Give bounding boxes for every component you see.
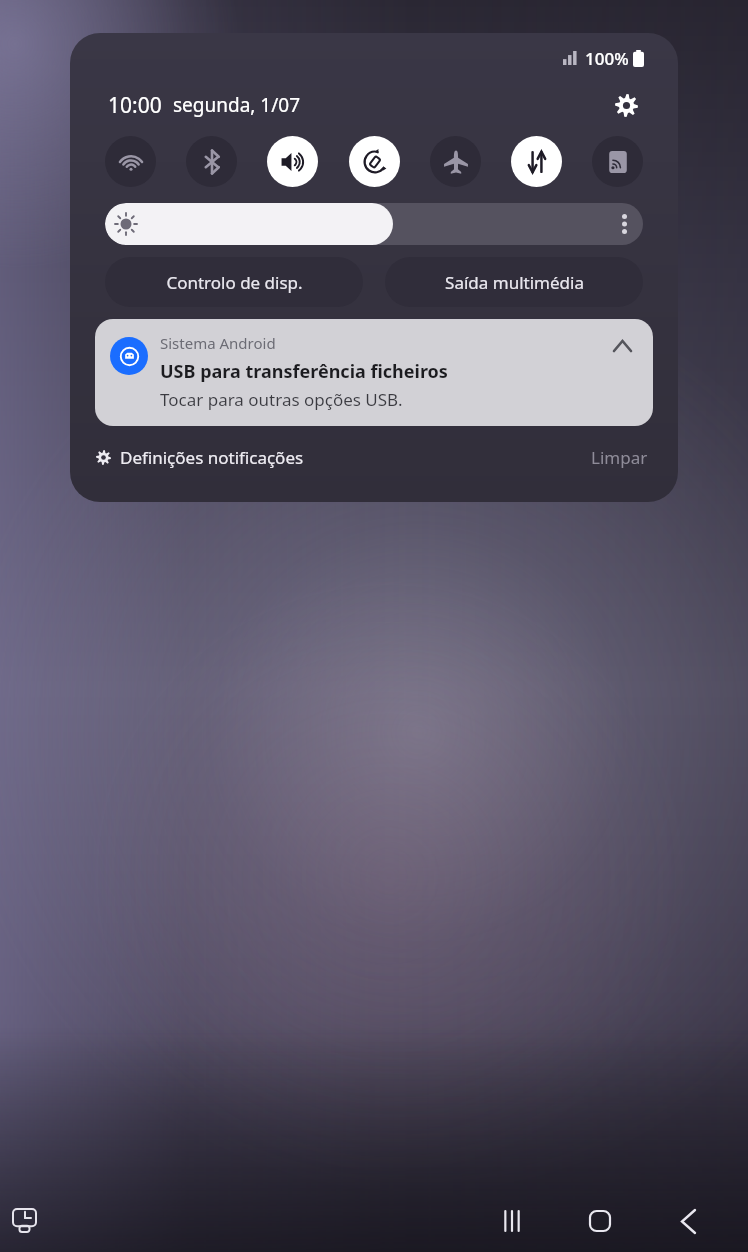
- button[interactable]: Wi-Fi: [105, 136, 156, 187]
- button[interactable]: Voltar: [666, 1199, 710, 1243]
- staticText: Controlo de disp.: [166, 271, 303, 294]
- button[interactable]: Reduzir: [605, 329, 639, 363]
- staticText: Tocar para outras opções USB.: [160, 388, 403, 411]
- button[interactable]: Sistema Android: [95, 319, 653, 426]
- button[interactable]: Início: [578, 1199, 622, 1243]
- staticText: segunda, 1/07: [173, 92, 301, 118]
- button[interactable]: Controlo de disp.: [105, 257, 363, 307]
- staticText: USB para transferência ficheiros: [160, 359, 448, 384]
- button[interactable]: Definições: [606, 85, 646, 125]
- button[interactable]: Ocultar teclado: [4, 1201, 44, 1241]
- button[interactable]: Limpar: [591, 446, 648, 469]
- staticText: 10:00: [108, 91, 162, 120]
- button[interactable]: Rotação automática: [349, 136, 400, 187]
- button[interactable]: Definições notificações: [96, 446, 304, 469]
- button[interactable]: Brilho: [105, 203, 643, 245]
- staticText: Limpar: [591, 446, 648, 469]
- button[interactable]: Recentes: [490, 1199, 534, 1243]
- button[interactable]: Saída multimédia: [385, 257, 643, 307]
- button[interactable]: Bluetooth: [186, 136, 237, 187]
- staticText: Definições notificações: [120, 446, 304, 469]
- staticText: Saída multimédia: [445, 271, 584, 294]
- staticText: Sistema Android: [160, 333, 276, 353]
- button[interactable]: Smart View: [592, 136, 643, 187]
- button[interactable]: Som: [267, 136, 318, 187]
- button[interactable]: Modo de voo: [430, 136, 481, 187]
- staticText: 100%: [585, 47, 629, 70]
- button[interactable]: Dados móveis: [511, 136, 562, 187]
